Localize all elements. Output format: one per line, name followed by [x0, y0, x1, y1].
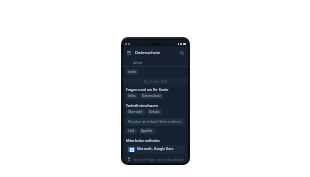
button[interactable]: mehr	[126, 69, 139, 75]
staticText: Fragen rund um Ihr Konto	[126, 87, 169, 92]
button[interactable]: Microsoft - Google Docs	[126, 145, 185, 154]
other: Voice input	[126, 156, 131, 161]
staticText: Datenschutz	[142, 94, 161, 98]
staticText: Übersicht	[128, 110, 143, 114]
button[interactable]: Details	[147, 109, 162, 115]
staticText: Infos	[128, 94, 136, 98]
button[interactable]: Search	[179, 50, 185, 56]
staticText: Link	[128, 129, 135, 133]
button[interactable]: Menu	[126, 50, 132, 56]
staticText: Datenschutz	[135, 50, 161, 56]
button[interactable]: Übersicht	[126, 109, 145, 115]
button[interactable]: Worüber ist einfach? Mehr erfahren	[125, 118, 185, 126]
staticText: Worüber ist einfach? Mehr erfahren	[128, 120, 182, 124]
button[interactable]: Voice input	[123, 154, 188, 163]
button[interactable]: Infos	[126, 93, 138, 99]
staticText: Technik einschauen	[126, 103, 158, 108]
staticText: Mitarbeiter anfinden	[126, 138, 160, 143]
staticText: Microsoft - Google Docs	[137, 147, 174, 151]
staticText: Text mit Frage oder Link anfügen	[133, 157, 185, 161]
button[interactable]: Applink	[139, 128, 155, 134]
staticText: pfizer	[133, 60, 143, 65]
staticText: Details	[149, 110, 160, 114]
button[interactable]: Datenschutz	[140, 93, 163, 99]
staticText: Di, 11. Feb. 2021	[144, 80, 168, 84]
staticText: Applink	[141, 129, 153, 133]
button[interactable]: Link	[126, 128, 137, 134]
staticText: mehr	[128, 70, 137, 74]
